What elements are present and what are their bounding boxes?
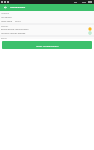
staticText: Net Service [1, 16, 12, 19]
button[interactable]: Net Service [0, 15, 94, 19]
staticText: Configuration [10, 6, 26, 9]
staticText: admin [15, 20, 21, 23]
staticText: Network [1, 12, 10, 15]
staticText: Apply Configuration [36, 44, 59, 47]
staticText: Devices [1, 25, 9, 27]
staticText: Location Services Enabled [1, 32, 26, 35]
staticText: Result [1, 37, 7, 39]
button[interactable]: Login name [0, 19, 94, 23]
button[interactable]: Back [0, 4, 10, 11]
staticText: Enable Device Administration [1, 28, 29, 31]
button[interactable]: Apply Configuration [2, 41, 92, 49]
staticText: Login name [1, 20, 13, 23]
button[interactable]: Location Services Enabled [0, 31, 94, 35]
button[interactable]: Enable Device Administration [0, 27, 94, 31]
